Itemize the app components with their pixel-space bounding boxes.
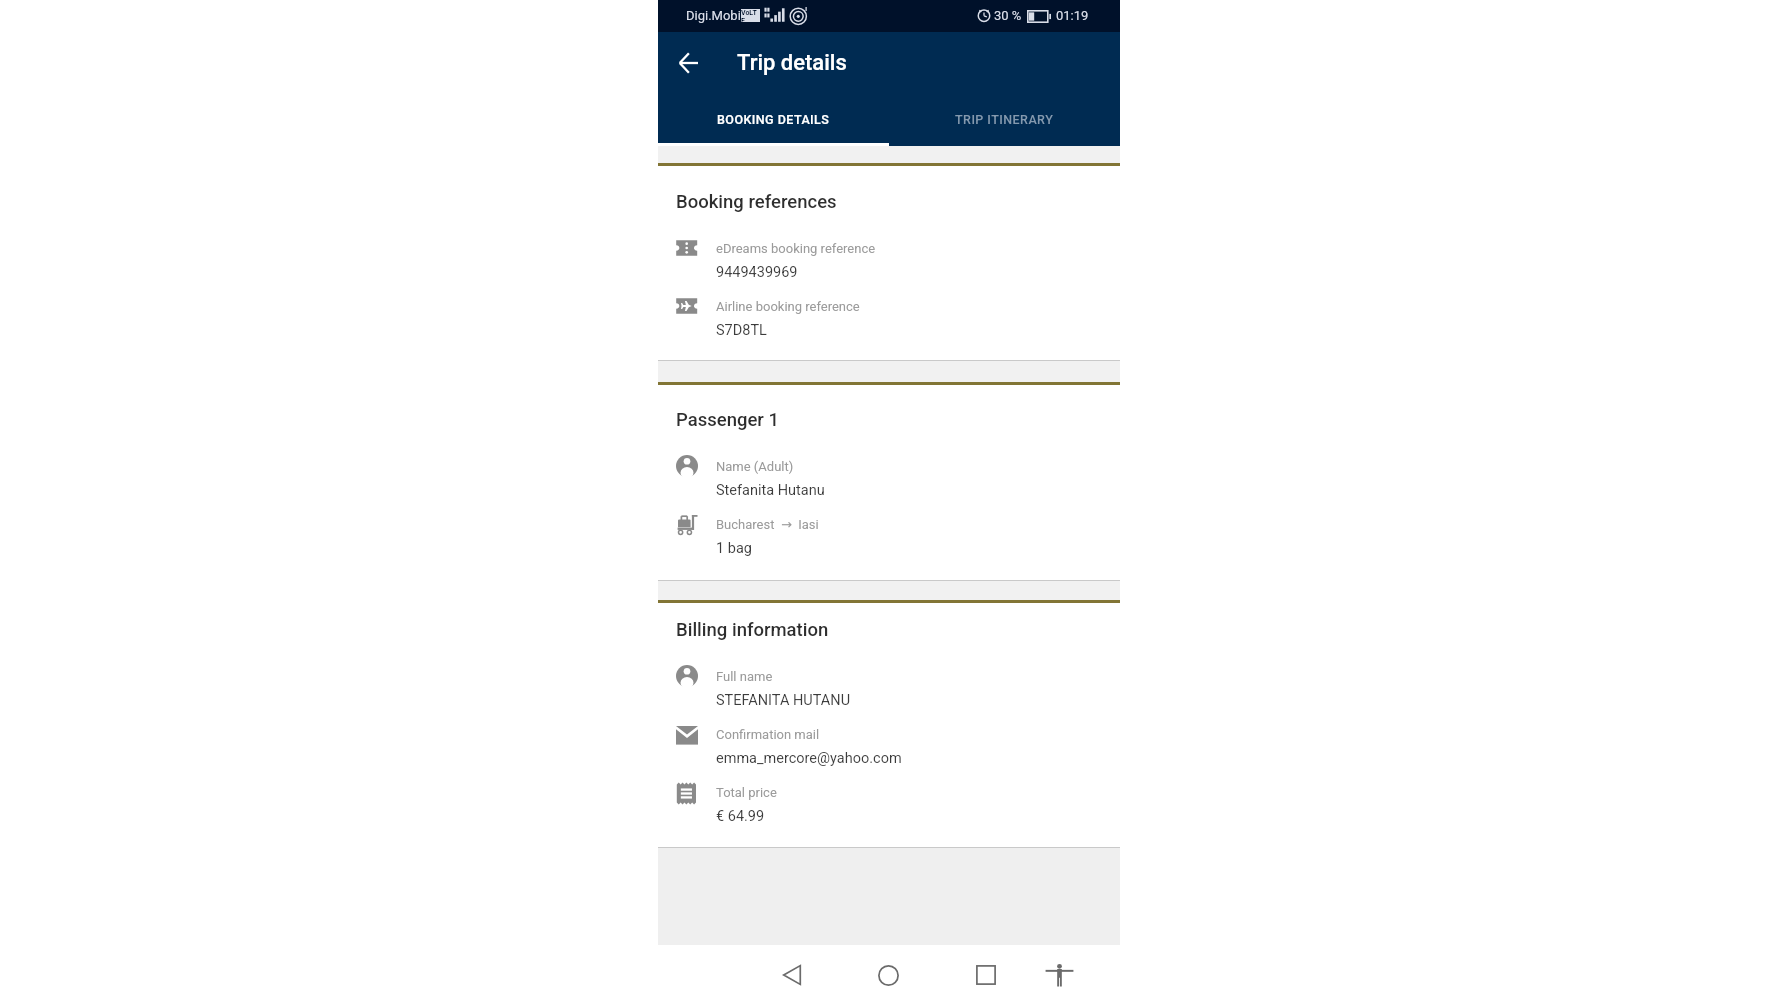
staticText: TRIP ITINERARY [955,112,1054,127]
staticText: Full name [716,669,773,684]
staticText: Digi.Mobil [686,8,744,23]
button[interactable]: TRIP ITINERARY [889,94,1120,144]
button[interactable]: Bucharest → Iasi [658,517,1120,557]
staticText: Passenger 1 [676,409,779,431]
staticText: Total price [716,785,777,800]
staticText: eDreams booking reference [716,241,876,256]
staticText: emma_mercore@yahoo.com [716,750,902,767]
staticText: 30 % [994,8,1022,23]
button[interactable]: Back [769,952,815,998]
button[interactable]: Total price [658,785,1120,825]
staticText: STEFANITA HUTANU [716,692,851,709]
staticText: Airline booking reference [716,299,860,314]
staticText: Name (Adult) [716,459,794,474]
staticText: 1 bag [716,540,752,557]
staticText: VoLTE [741,9,760,22]
button[interactable]: Recents [963,952,1009,998]
button[interactable]: Airline booking reference [658,299,1120,339]
staticText: BOOKING DETAILS [717,112,830,127]
staticText: Bucharest → Iasi [716,517,819,532]
staticText: Booking references [676,191,837,213]
staticText: € 64.99 [716,808,765,825]
staticText: Billing information [676,619,829,641]
button[interactable]: BOOKING DETAILS [658,94,889,144]
staticText: Confirmation mail [716,727,820,742]
button[interactable]: eDreams booking reference [658,241,1120,281]
staticText: Stefanita Hutanu [716,482,825,499]
button[interactable]: Back [666,41,710,85]
button[interactable]: Confirmation mail [658,727,1120,767]
staticText: 9449439969 [716,264,798,281]
button[interactable]: Home [865,952,911,998]
staticText: S7D8TL [716,322,767,339]
button[interactable]: Full name [658,669,1120,709]
button[interactable]: Name (Adult) [658,459,1120,499]
staticText: 01:19 [1056,8,1089,23]
staticText: Trip details [737,50,847,76]
button[interactable]: Accessibility [1036,952,1082,998]
